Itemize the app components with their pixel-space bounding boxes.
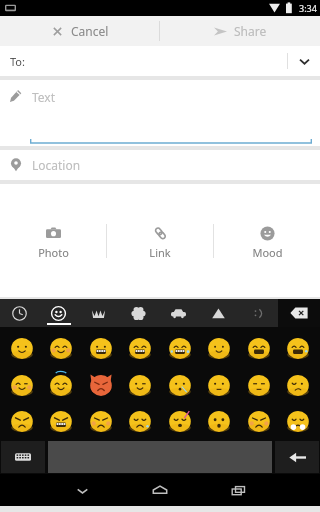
button[interactable]: Emoji 16 — [4, 403, 40, 439]
staticText: Photo — [38, 245, 69, 260]
button[interactable]: sym — [238, 299, 278, 327]
button[interactable]: Emoji 9 — [43, 367, 79, 403]
button[interactable]: Link — [107, 224, 213, 262]
button[interactable]: Cancel — [0, 16, 159, 46]
button[interactable]: Recents — [199, 474, 277, 506]
button[interactable]: Emoji 22 — [241, 403, 277, 439]
button[interactable]: Emoji 2 — [83, 330, 119, 366]
staticText: Location — [32, 157, 81, 173]
button[interactable]: Emoji 11 — [122, 367, 158, 403]
button[interactable]: Emoji 19 — [122, 403, 158, 439]
button[interactable]: Emoji 5 — [201, 330, 237, 366]
button[interactable]: Back — [43, 474, 121, 506]
button[interactable]: To: — [0, 46, 320, 76]
button[interactable]: clock — [0, 299, 39, 327]
staticText: To: — [10, 54, 25, 69]
button[interactable]: Enter — [275, 441, 319, 473]
button[interactable]: Mood — [214, 224, 320, 262]
button[interactable]: Backspace — [278, 299, 320, 327]
button[interactable]: tri — [198, 299, 238, 327]
button[interactable]: Switch keyboard — [1, 441, 45, 473]
staticText: Share — [234, 23, 267, 39]
button[interactable]: Photo — [0, 224, 106, 262]
button[interactable]: Share — [160, 16, 320, 46]
staticText: Link — [149, 245, 171, 260]
button[interactable]: Emoji 10 — [83, 367, 119, 403]
button[interactable]: Emoji 0 — [4, 330, 40, 366]
button[interactable]: Text — [0, 80, 320, 146]
button[interactable]: Emoji 13 — [201, 367, 237, 403]
button[interactable]: car — [158, 299, 198, 327]
button[interactable]: Emoji 23 — [280, 403, 316, 439]
button[interactable]: Emoji 18 — [83, 403, 119, 439]
button[interactable]: Emoji 8 — [4, 367, 40, 403]
staticText: 3:34 — [299, 2, 317, 14]
staticText: Mood — [252, 245, 283, 260]
button[interactable]: Emoji 15 — [280, 367, 316, 403]
button[interactable]: Emoji 6 — [241, 330, 277, 366]
button[interactable]: Emoji 3 — [122, 330, 158, 366]
button[interactable]: Emoji 12 — [162, 367, 198, 403]
button[interactable]: Emoji 17 — [43, 403, 79, 439]
button[interactable]: crown — [78, 299, 118, 327]
button[interactable]: Location — [0, 150, 320, 180]
button[interactable]: Emoji 14 — [241, 367, 277, 403]
staticText: Cancel — [71, 23, 109, 39]
button[interactable]: flower — [118, 299, 158, 327]
button[interactable]: Emoji 1 — [43, 330, 79, 366]
button[interactable]: Home — [121, 474, 199, 506]
button[interactable]: Emoji 4 — [162, 330, 198, 366]
button[interactable]: Emoji 7 — [280, 330, 316, 366]
button[interactable]: smile — [39, 299, 78, 327]
button[interactable]: Emoji 20 — [162, 403, 198, 439]
staticText: Text — [32, 89, 56, 105]
button[interactable]: Emoji 21 — [201, 403, 237, 439]
